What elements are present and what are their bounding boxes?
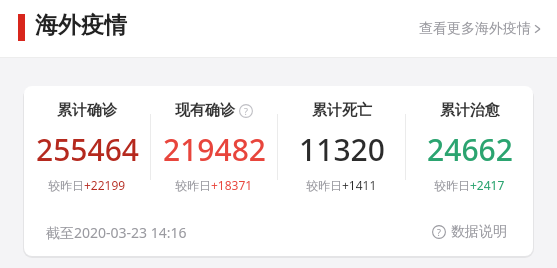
staticText: 24662 [427, 129, 513, 170]
staticText: 255464 [36, 129, 139, 170]
button[interactable]: 查看更多海外疫情 [411, 14, 549, 44]
other: Help [432, 225, 446, 239]
staticText: 查看更多海外疫情 [419, 20, 531, 38]
staticText: 现有确诊 [175, 101, 235, 120]
button[interactable]: 现有确诊 [151, 86, 277, 208]
staticText: 11320 [299, 129, 385, 170]
staticText: 较昨日+22199 [48, 177, 126, 193]
staticText: ? [437, 226, 441, 238]
button[interactable]: Help [428, 219, 511, 245]
staticText: 累计治愈 [440, 101, 500, 120]
button[interactable]: 累计确诊 [24, 86, 150, 208]
staticText: 数据说明 [451, 223, 507, 241]
staticText: 累计死亡 [312, 101, 372, 120]
other: Help [239, 104, 253, 118]
staticText: 海外疫情 [35, 11, 127, 40]
staticText: 截至2020-03-23 14:16 [46, 223, 187, 242]
button[interactable]: 累计死亡 [278, 86, 405, 208]
button[interactable]: 累计治愈 [406, 86, 533, 208]
staticText: 累计确诊 [57, 101, 117, 120]
staticText: 219482 [163, 129, 266, 170]
staticText: 较昨日+1411 [306, 177, 377, 193]
staticText: 较昨日+2417 [434, 177, 505, 193]
staticText: 较昨日+18371 [175, 177, 253, 193]
staticText: ? [244, 105, 248, 117]
